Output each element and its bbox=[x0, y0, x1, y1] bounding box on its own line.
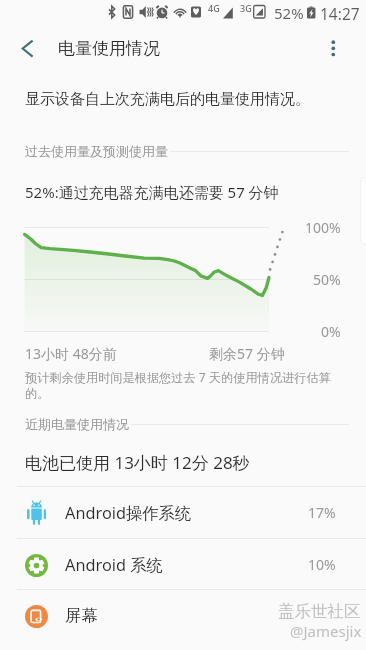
staticText: 4G bbox=[208, 2, 220, 14]
staticText: 14:27 bbox=[320, 3, 360, 24]
staticText: 13小时 48分前 bbox=[25, 344, 117, 363]
button[interactable]: Navigate up bbox=[0, 24, 56, 72]
staticText: 电量使用情况 bbox=[58, 38, 160, 59]
staticText: 屏幕 bbox=[65, 605, 98, 626]
staticText: 预计剩余使用时间是根据您过去 7 天的使用情况进行估算的。 bbox=[25, 369, 347, 401]
button[interactable]: 屏幕 bbox=[0, 590, 366, 641]
staticText: Android操作系统 bbox=[65, 502, 192, 524]
staticText: 电池已使用 13小时 12分 28秒 bbox=[25, 451, 250, 474]
staticText: 3G bbox=[240, 2, 252, 14]
staticText: Android 系统 bbox=[65, 554, 163, 576]
button[interactable]: More options bbox=[318, 24, 362, 72]
staticText: 52% bbox=[274, 3, 304, 23]
staticText: 17% bbox=[308, 503, 336, 522]
staticText: 显示设备自上次充满电后的电量使用情况。 bbox=[25, 90, 310, 109]
staticText: 盖乐世社区 bbox=[278, 601, 361, 622]
staticText: 剩余57 分钟 bbox=[209, 344, 285, 363]
staticText: @Jamesjix bbox=[290, 621, 362, 641]
staticText: 过去使用量及预测使用量 bbox=[25, 143, 168, 159]
staticText: 100% bbox=[305, 218, 341, 237]
staticText: 50% bbox=[313, 270, 341, 289]
button[interactable]: Android 系统 bbox=[0, 539, 366, 590]
staticText: 近期电量使用情况 bbox=[25, 416, 129, 432]
staticText: 52%:通过充电器充满电还需要 57 分钟 bbox=[25, 182, 279, 202]
button[interactable]: Android操作系统 bbox=[0, 487, 366, 538]
staticText: 0% bbox=[321, 322, 341, 341]
staticText: 10% bbox=[308, 555, 336, 574]
